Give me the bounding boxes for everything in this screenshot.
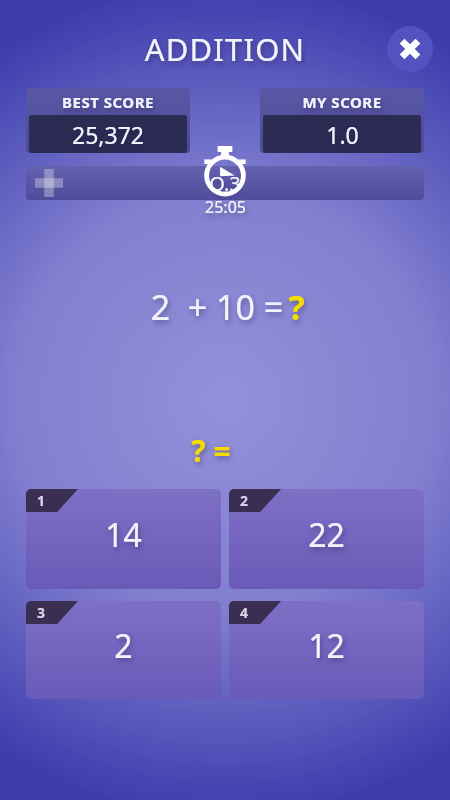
staticText: Q.3 [209, 170, 241, 197]
staticText: 14 [105, 513, 142, 557]
staticText: 1 [37, 491, 46, 510]
staticText: 25,372 [72, 119, 144, 150]
staticText: 4 [240, 603, 249, 622]
button[interactable]: 1 [26, 489, 221, 589]
staticText: 2 [240, 491, 249, 510]
button[interactable]: BEST SCORE [26, 88, 190, 153]
staticText: 25:05 [205, 196, 246, 218]
staticText: 12 [308, 624, 345, 668]
button[interactable]: Close [387, 26, 433, 72]
staticText: ADDITION [0, 28, 450, 70]
staticText: ? [288, 284, 305, 330]
staticText: 3 [37, 603, 46, 622]
staticText: BEST SCORE [62, 92, 154, 112]
button[interactable]: Q.3 [26, 166, 424, 200]
staticText: 2 + 10 = [146, 284, 288, 330]
staticText: MY SCORE [302, 92, 382, 112]
button[interactable]: MY SCORE [260, 88, 424, 153]
button[interactable]: 3 [26, 601, 221, 699]
staticText: 1.0 [326, 119, 359, 150]
staticText: ? = [191, 430, 231, 471]
staticText: 2 [114, 624, 133, 668]
button[interactable]: 4 [229, 601, 424, 699]
staticText: 22 [308, 513, 345, 557]
button[interactable]: 2 [229, 489, 424, 589]
